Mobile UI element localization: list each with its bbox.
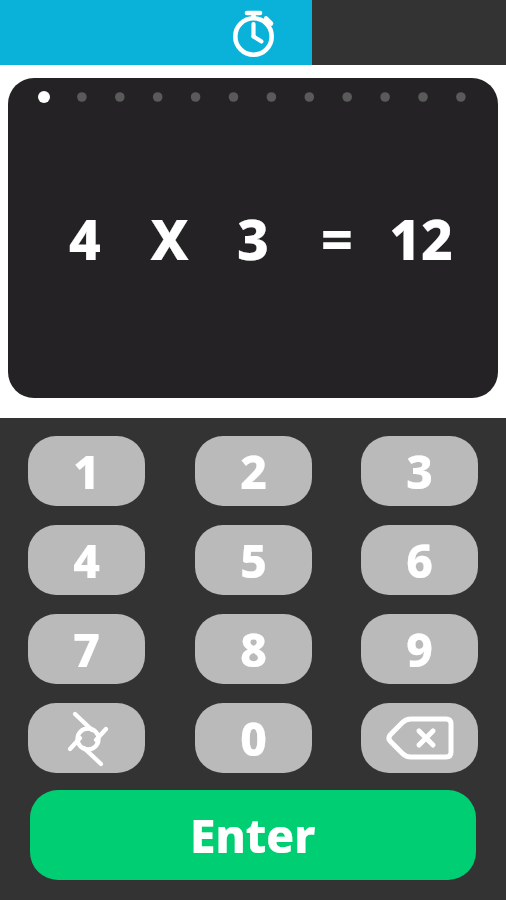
staticText: 1 [73, 440, 100, 503]
button[interactable]: Enter [30, 790, 476, 880]
staticText: 3 [237, 201, 269, 276]
button[interactable]: 8 [195, 614, 312, 684]
staticText: 9 [406, 618, 433, 681]
staticText: 4 [73, 529, 100, 592]
button[interactable]: 5 [195, 525, 312, 595]
button[interactable] [361, 703, 478, 773]
staticText: 12 [389, 201, 453, 276]
staticText: 0 [240, 707, 267, 770]
button[interactable]: 6 [361, 525, 478, 595]
staticText: Enter [190, 804, 316, 867]
button[interactable]: 0 [195, 703, 312, 773]
staticText: 3 [406, 440, 433, 503]
button[interactable] [0, 0, 312, 65]
staticText: 2 [240, 440, 267, 503]
staticText: 4 [69, 201, 101, 276]
button[interactable] [28, 703, 145, 773]
staticText: 8 [240, 618, 267, 681]
button[interactable]: 3 [361, 436, 478, 506]
button[interactable]: 1 [28, 436, 145, 506]
staticText: 7 [73, 618, 100, 681]
button[interactable]: 2 [195, 436, 312, 506]
button[interactable]: 7 [28, 614, 145, 684]
button[interactable]: 4 [28, 525, 145, 595]
staticText: = [321, 201, 353, 276]
staticText: 6 [406, 529, 433, 592]
button[interactable]: 9 [361, 614, 478, 684]
staticText: 5 [240, 529, 267, 592]
staticText: X [150, 201, 189, 276]
